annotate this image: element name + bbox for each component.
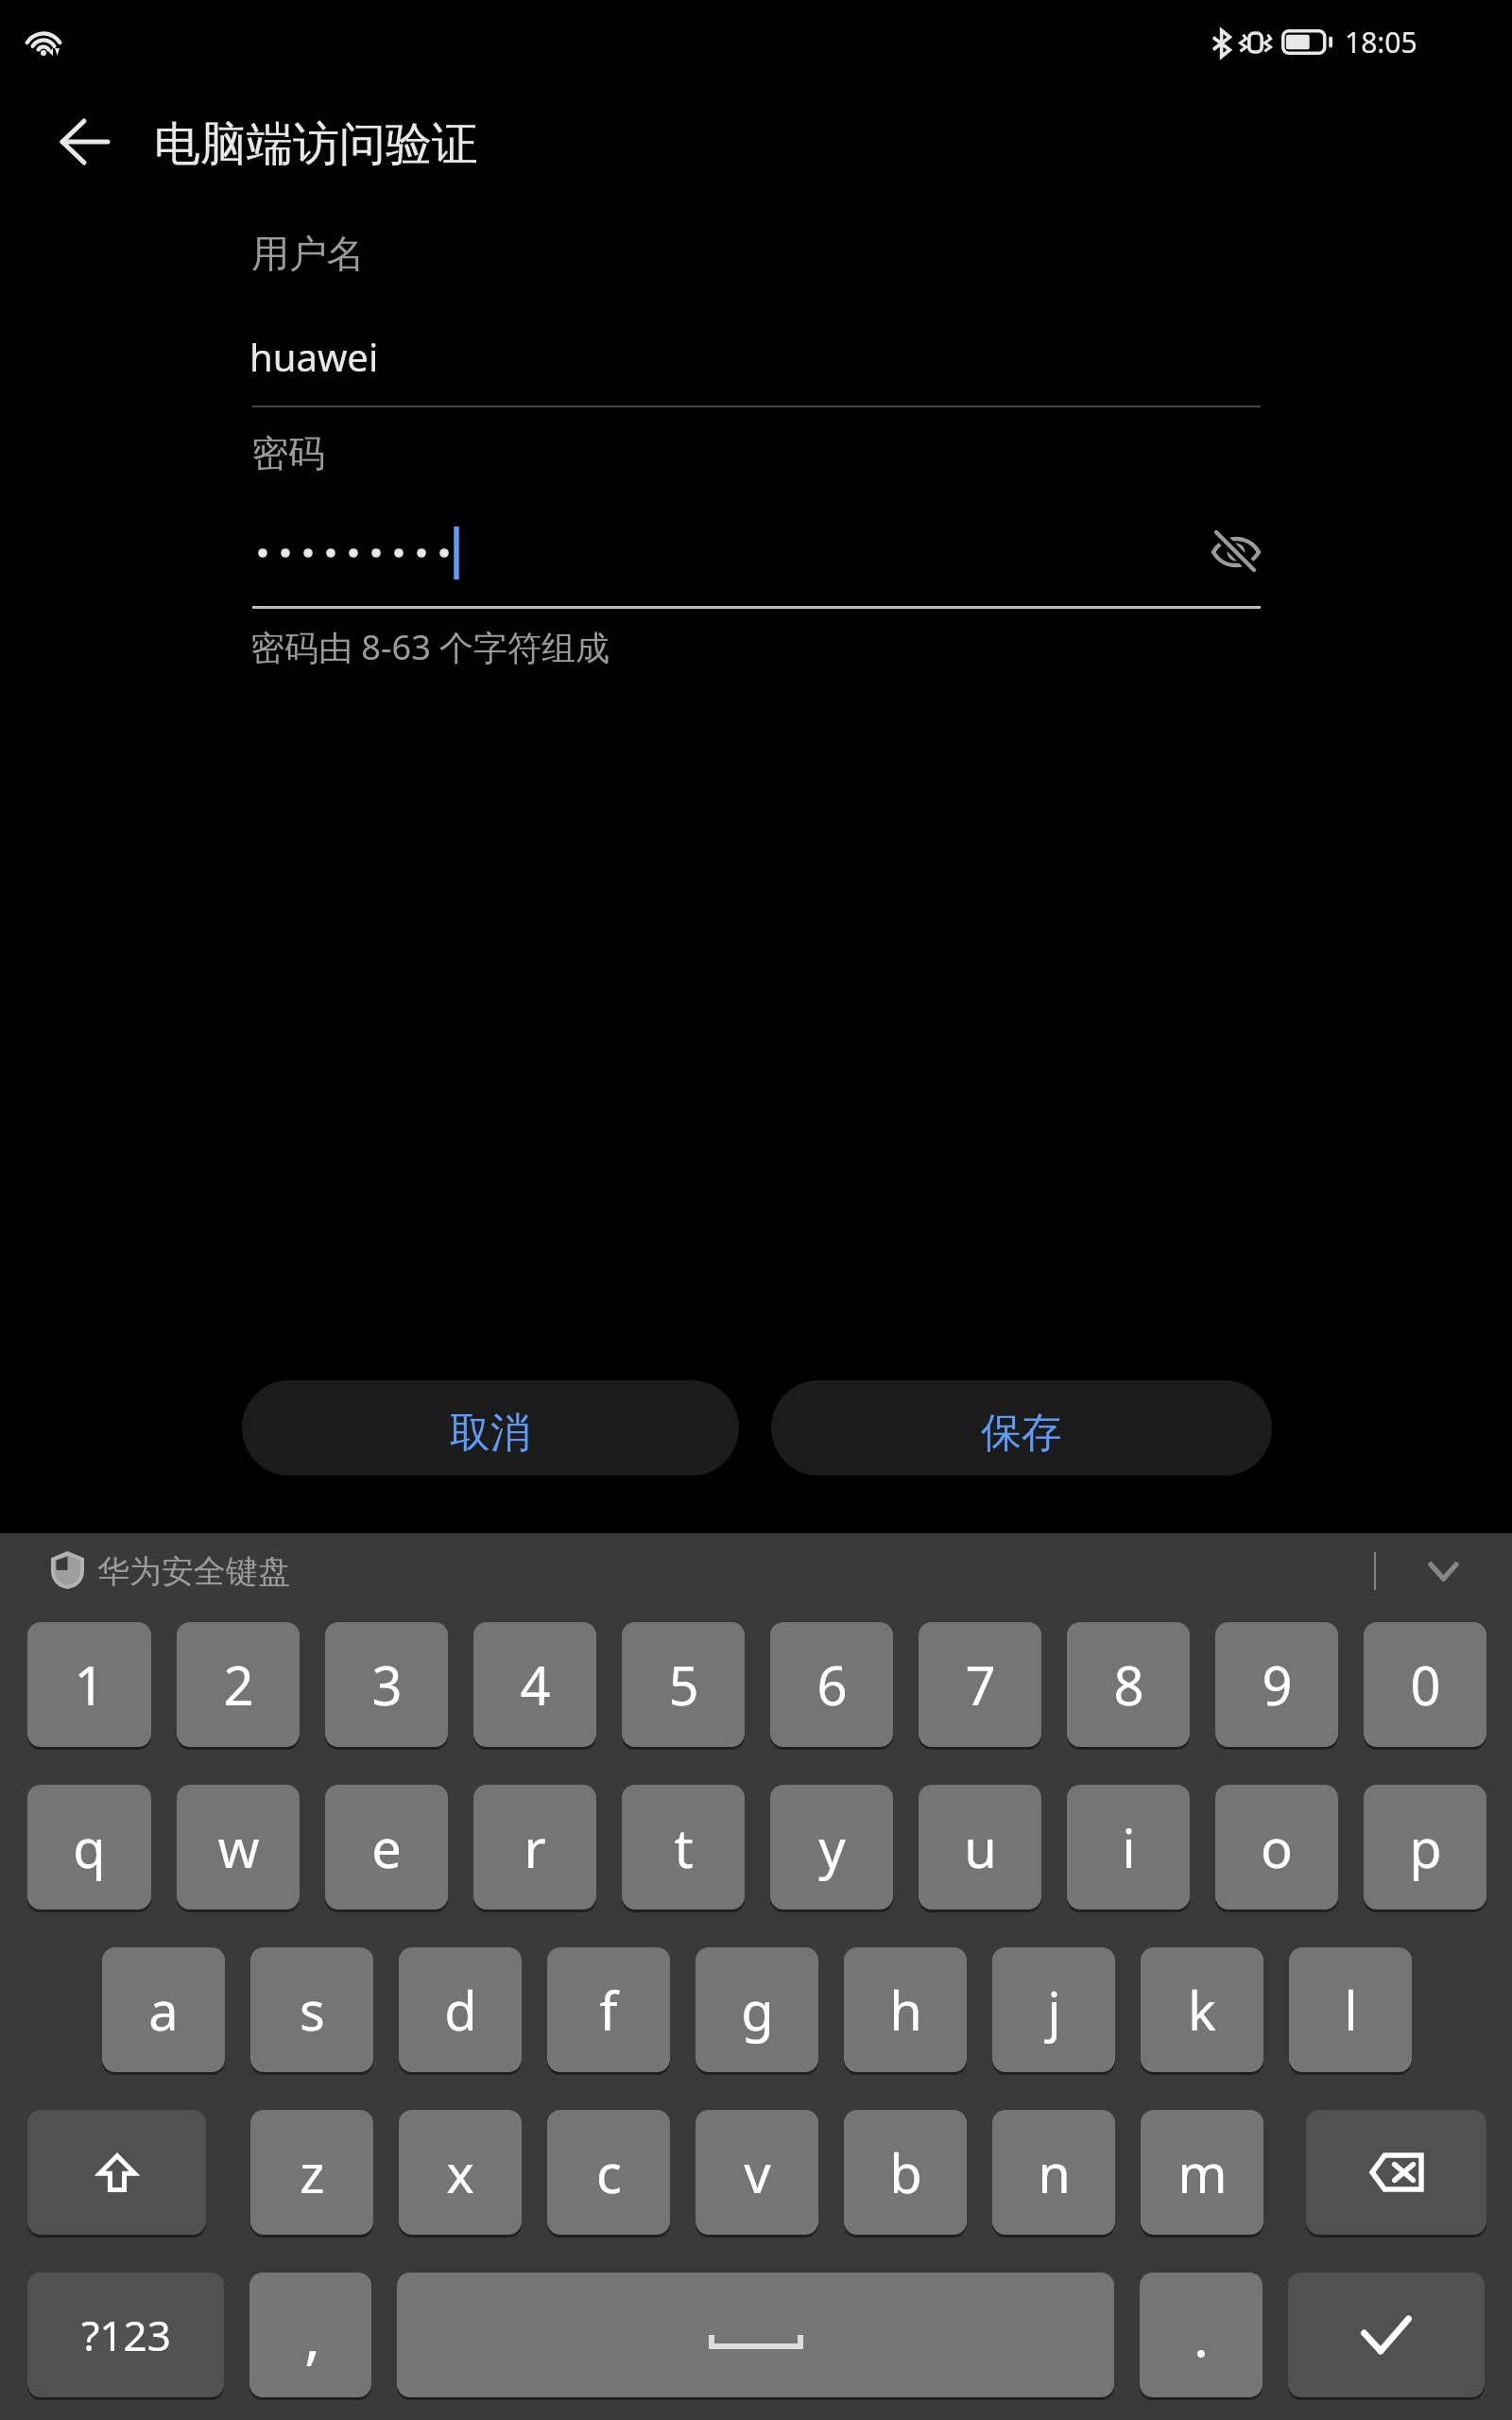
staticText: l xyxy=(1344,1974,1358,2046)
staticText: 电脑端访问验证 xyxy=(154,115,478,174)
button[interactable]: o xyxy=(1215,1785,1338,1910)
staticText: 18:05 xyxy=(1345,23,1417,61)
staticText: v xyxy=(744,2136,771,2208)
button[interactable]: s xyxy=(250,1947,373,2072)
button[interactable]: 取消 xyxy=(242,1380,739,1476)
staticText: 9 xyxy=(1262,1649,1293,1720)
staticText: 用户名 xyxy=(251,230,365,277)
button[interactable]: 1 xyxy=(27,1622,151,1747)
staticText: 6 xyxy=(816,1649,848,1720)
button[interactable]: y xyxy=(770,1785,893,1910)
staticText: p xyxy=(1409,1811,1442,1883)
staticText: y xyxy=(818,1811,846,1883)
button[interactable]: Shift xyxy=(27,2110,206,2235)
button[interactable]: 7 xyxy=(919,1622,1041,1747)
staticText: 8 xyxy=(1113,1649,1144,1720)
staticText: h xyxy=(889,1974,922,2046)
button[interactable]: u xyxy=(919,1785,1041,1910)
staticText: 5 xyxy=(668,1649,699,1720)
staticText: huawei xyxy=(249,331,379,382)
staticText: z xyxy=(300,2136,325,2208)
button[interactable]: 9 xyxy=(1215,1622,1338,1747)
staticText: 3 xyxy=(371,1649,403,1720)
staticText: 密码由 8-63 个字符组成 xyxy=(250,624,610,670)
staticText: 取消 xyxy=(450,1408,531,1459)
staticText: d xyxy=(444,1974,477,2046)
button[interactable]: n xyxy=(992,2110,1115,2235)
button[interactable]: g xyxy=(696,1947,818,2072)
button[interactable]: z xyxy=(250,2110,373,2235)
staticText: k xyxy=(1188,1974,1216,2046)
button[interactable]: v xyxy=(696,2110,818,2235)
staticText: c xyxy=(596,2136,622,2208)
button[interactable]: m xyxy=(1141,2110,1263,2235)
staticText: a xyxy=(148,1974,179,2046)
staticText: r xyxy=(524,1811,546,1883)
button[interactable]: i xyxy=(1067,1785,1190,1910)
staticText: x xyxy=(446,2136,474,2208)
staticText: b xyxy=(889,2136,922,2208)
button[interactable]: w xyxy=(177,1785,300,1910)
button[interactable]: d xyxy=(399,1947,522,2072)
button[interactable]: h xyxy=(844,1947,967,2072)
staticText: , xyxy=(304,2294,321,2377)
button[interactable]: 6 xyxy=(770,1622,893,1747)
staticText: t xyxy=(674,1811,694,1883)
staticText: 1 xyxy=(74,1649,105,1720)
button[interactable]: f xyxy=(547,1947,670,2072)
staticText: o xyxy=(1261,1811,1293,1883)
staticText: f xyxy=(599,1974,618,2046)
button[interactable]: 8 xyxy=(1067,1622,1190,1747)
button[interactable]: , xyxy=(249,2273,371,2397)
button[interactable]: j xyxy=(992,1947,1115,2072)
staticText: ?123 xyxy=(81,2307,171,2363)
button[interactable]: l xyxy=(1289,1947,1412,2072)
staticText: j xyxy=(1047,1974,1061,2046)
staticText: q xyxy=(73,1811,106,1883)
staticText: m xyxy=(1177,2136,1228,2208)
button[interactable]: 2 xyxy=(177,1622,300,1747)
button[interactable]: ?123 xyxy=(27,2273,224,2397)
staticText: 7 xyxy=(965,1649,996,1720)
button[interactable]: Hide keyboard xyxy=(1399,1540,1487,1602)
staticText: s xyxy=(300,1974,325,2046)
staticText: g xyxy=(741,1974,774,2046)
button[interactable]: Show password xyxy=(1194,516,1270,584)
staticText: n xyxy=(1038,2136,1071,2208)
button[interactable]: Enter xyxy=(1288,2273,1485,2397)
button[interactable]: 保存 xyxy=(771,1380,1272,1476)
staticText: w xyxy=(217,1811,260,1883)
button[interactable]: b xyxy=(844,2110,967,2235)
button[interactable]: k xyxy=(1141,1947,1263,2072)
staticText: e xyxy=(371,1811,402,1883)
button[interactable]: e xyxy=(325,1785,448,1910)
staticText: 2 xyxy=(223,1649,254,1720)
button[interactable]: 3 xyxy=(325,1622,448,1747)
button[interactable]: a xyxy=(102,1947,225,2072)
button[interactable]: x xyxy=(399,2110,522,2235)
staticText: u xyxy=(964,1811,997,1883)
button[interactable]: Period xyxy=(1140,2273,1263,2397)
staticText: i xyxy=(1122,1811,1136,1883)
staticText: 华为安全键盘 xyxy=(97,1551,290,1592)
staticText: 4 xyxy=(520,1649,551,1720)
button[interactable]: 0 xyxy=(1364,1622,1486,1747)
button[interactable]: 5 xyxy=(622,1622,745,1747)
button[interactable]: Back xyxy=(38,95,132,189)
button[interactable]: Backspace xyxy=(1306,2110,1486,2235)
staticText: 保存 xyxy=(981,1408,1062,1459)
staticText: 密码 xyxy=(251,430,325,476)
button[interactable]: Space xyxy=(397,2273,1114,2397)
button[interactable]: r xyxy=(473,1785,596,1910)
button[interactable] xyxy=(252,219,1261,408)
button[interactable] xyxy=(252,421,1261,610)
button[interactable]: c xyxy=(547,2110,670,2235)
staticText: 0 xyxy=(1410,1649,1441,1720)
button[interactable]: t xyxy=(622,1785,745,1910)
button[interactable]: 4 xyxy=(473,1622,596,1747)
button[interactable]: p xyxy=(1364,1785,1486,1910)
button[interactable]: q xyxy=(27,1785,151,1910)
